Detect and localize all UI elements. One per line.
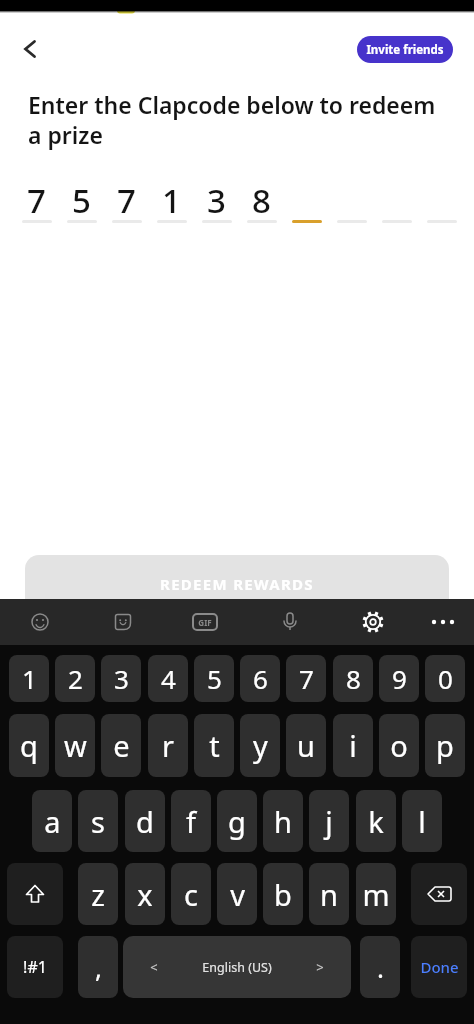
staticText: c — [184, 875, 198, 914]
button[interactable]: i — [333, 714, 373, 777]
staticText: v — [230, 875, 245, 914]
button[interactable]: 6 — [240, 655, 280, 702]
staticText: l — [418, 802, 426, 841]
button[interactable]: x — [125, 863, 165, 925]
button[interactable]: 9 — [379, 655, 419, 702]
button[interactable]: m — [356, 863, 396, 925]
staticText: q — [20, 726, 38, 765]
button[interactable] — [102, 601, 144, 643]
staticText: !#1 — [23, 956, 47, 978]
button[interactable]: n — [309, 863, 349, 925]
button[interactable]: 1 — [9, 655, 49, 702]
button[interactable]: 8 — [333, 655, 373, 702]
button[interactable]: g — [217, 790, 257, 852]
button[interactable] — [7, 863, 63, 925]
staticText: 4 — [161, 661, 176, 696]
button[interactable] — [269, 601, 311, 643]
staticText: 8 — [346, 661, 361, 696]
button[interactable]: a — [32, 790, 72, 852]
staticText: d — [136, 802, 154, 841]
button[interactable]: !#1 — [7, 936, 63, 998]
button[interactable]: Done — [411, 936, 467, 998]
staticText: 2 — [68, 661, 83, 696]
staticText: a — [44, 802, 61, 841]
button[interactable]: s — [78, 790, 118, 852]
staticText: m — [362, 875, 390, 914]
button[interactable]: k — [356, 790, 396, 852]
button[interactable]: GIF — [184, 601, 226, 643]
button[interactable]: . — [360, 936, 400, 998]
staticText: w — [64, 726, 87, 765]
staticText: Invite friends — [366, 42, 444, 58]
button[interactable]: d — [125, 790, 165, 852]
staticText: 8 — [252, 178, 271, 217]
button[interactable]: c — [171, 863, 211, 925]
button[interactable]: Invite friends — [357, 36, 453, 63]
button[interactable]: English (US) — [123, 936, 351, 998]
staticText: t — [209, 726, 220, 765]
staticText: o — [390, 726, 408, 765]
staticText: 0 — [438, 661, 453, 696]
button[interactable]: f — [171, 790, 211, 852]
staticText: Done — [420, 957, 459, 977]
staticText: k — [368, 802, 384, 841]
button[interactable]: q — [9, 714, 49, 777]
button[interactable] — [422, 601, 464, 643]
button[interactable]: 7 — [286, 655, 326, 702]
button[interactable]: w — [55, 714, 95, 777]
staticText: 1 — [22, 661, 37, 696]
staticText: s — [91, 802, 105, 841]
staticText: i — [349, 726, 357, 765]
button[interactable]: z — [78, 863, 118, 925]
button[interactable] — [12, 33, 48, 65]
staticText: u — [297, 726, 315, 765]
staticText: 6 — [253, 661, 268, 696]
button[interactable]: 3 — [101, 655, 141, 702]
staticText: REDEEM REWARDS — [160, 574, 314, 594]
button[interactable]: 2 — [55, 655, 95, 702]
button[interactable]: u — [286, 714, 326, 777]
staticText: 3 — [114, 661, 129, 696]
button[interactable]: , — [78, 936, 118, 998]
button[interactable]: r — [148, 714, 188, 777]
staticText: 7 — [27, 178, 46, 217]
staticText: 7 — [299, 661, 314, 696]
staticText: Enter the Clapcode below to redeem a pri… — [28, 89, 436, 150]
staticText: English (US) — [202, 959, 272, 976]
staticText: 5 — [207, 661, 222, 696]
button[interactable]: REDEEM REWARDS — [25, 555, 449, 599]
staticText: p — [436, 726, 454, 765]
staticText: , — [95, 950, 102, 985]
button[interactable]: e — [101, 714, 141, 777]
button[interactable] — [19, 601, 61, 643]
button[interactable]: o — [379, 714, 419, 777]
staticText: 3 — [207, 178, 226, 217]
button[interactable]: l — [402, 790, 442, 852]
button[interactable]: 0 — [425, 655, 465, 702]
staticText: < — [150, 958, 158, 976]
staticText: 5 — [72, 178, 91, 217]
button[interactable]: j — [309, 790, 349, 852]
staticText: x — [137, 875, 153, 914]
button[interactable]: v — [217, 863, 257, 925]
button[interactable]: 5 — [194, 655, 234, 702]
staticText: . — [377, 950, 384, 985]
staticText: z — [91, 875, 105, 914]
button[interactable]: 4 — [148, 655, 188, 702]
button[interactable]: p — [425, 714, 465, 777]
staticText: y — [253, 726, 268, 765]
button[interactable]: y — [240, 714, 280, 777]
staticText: 7 — [117, 178, 136, 217]
staticText: n — [320, 875, 338, 914]
staticText: 1 — [162, 178, 181, 217]
button[interactable] — [411, 863, 467, 925]
button[interactable] — [352, 601, 394, 643]
button[interactable]: b — [263, 863, 303, 925]
staticText: h — [274, 802, 292, 841]
staticText: e — [113, 726, 130, 765]
staticText: g — [228, 802, 246, 841]
staticText: 9 — [392, 661, 407, 696]
button[interactable]: t — [194, 714, 234, 777]
staticText: f — [186, 802, 196, 841]
button[interactable]: h — [263, 790, 303, 852]
